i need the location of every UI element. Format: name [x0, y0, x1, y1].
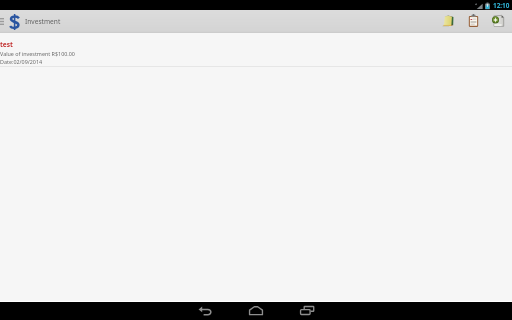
staticText: Value of investment R$100.00 — [0, 50, 75, 57]
button[interactable]: Open navigation drawer — [0, 10, 20, 33]
staticText: test — [0, 40, 13, 49]
button[interactable]: Reports — [461, 10, 486, 33]
button[interactable]: Folders — [436, 10, 461, 33]
staticText: Date:02/09/2014 — [0, 58, 43, 65]
button[interactable]: Home — [245, 302, 267, 320]
button[interactable]: Recent apps — [296, 302, 318, 320]
button[interactable]: Back — [194, 302, 216, 320]
staticText: 12:10 — [493, 1, 510, 10]
button[interactable]: New investment — [486, 10, 511, 33]
staticText: Investment — [25, 17, 61, 26]
button[interactable]: test — [0, 33, 512, 67]
